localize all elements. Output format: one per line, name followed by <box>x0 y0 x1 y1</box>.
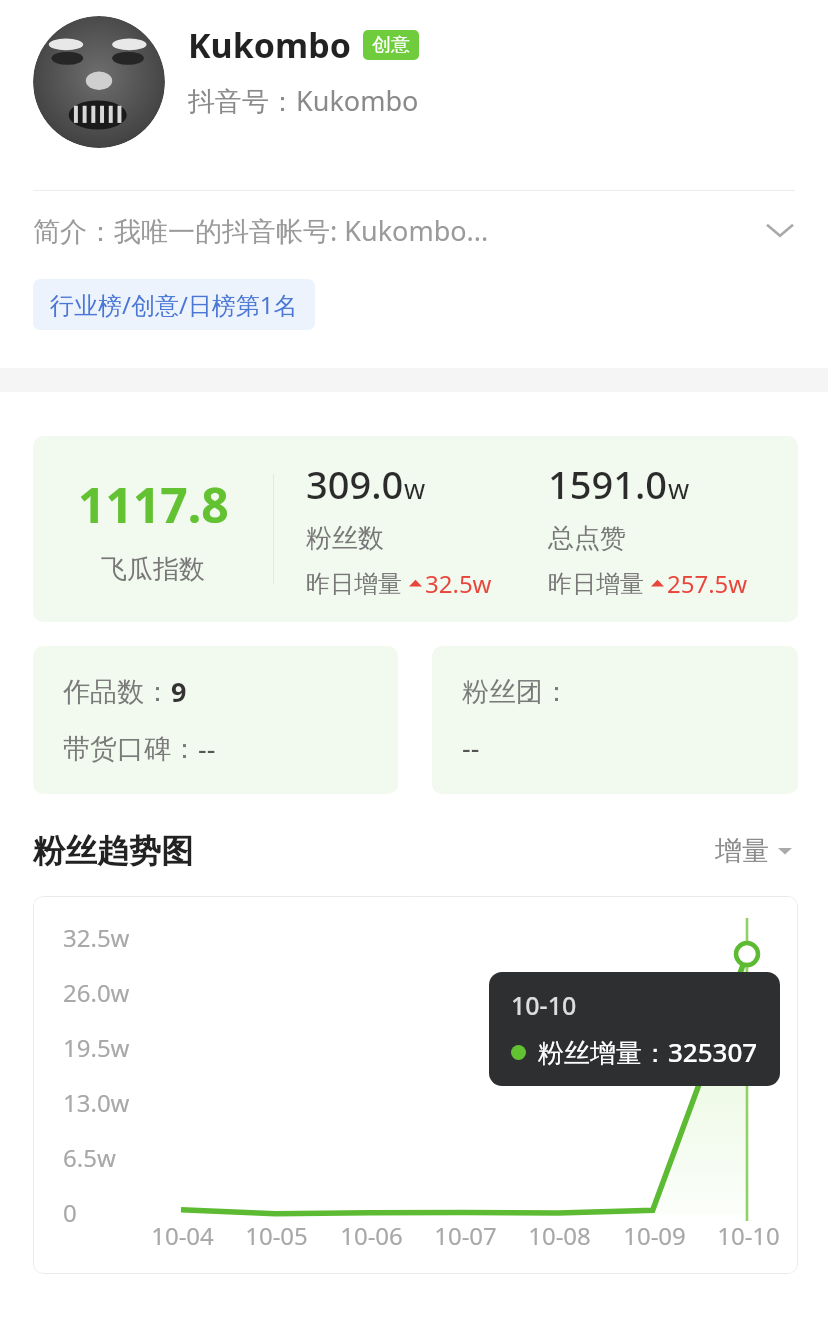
staticText: w <box>668 470 690 507</box>
staticText: 1117.8 <box>78 472 229 537</box>
staticText: 行业榜/创意/日榜第1名 <box>50 288 298 321</box>
staticText: 19.5w <box>63 1031 130 1064</box>
staticText: 昨日增量 <box>548 569 644 599</box>
staticText: 粉丝数 <box>306 522 384 555</box>
button[interactable]: Kukombo <box>33 16 828 148</box>
staticText: 粉丝趋势图 <box>33 831 193 871</box>
staticText: Kukombo <box>188 22 351 68</box>
staticText: w <box>404 470 426 507</box>
button[interactable]: 创意 <box>363 30 419 60</box>
button[interactable]: 展开简介 <box>752 202 808 258</box>
staticText: 10-07 <box>434 1219 497 1252</box>
staticText: 10-09 <box>623 1219 686 1252</box>
button[interactable]: 简介：我唯一的抖音帐号: Kukombo... <box>0 191 828 269</box>
staticText: 昨日增量 <box>306 569 402 599</box>
staticText: 总点赞 <box>548 522 626 555</box>
staticText: 10-10 <box>511 988 577 1022</box>
staticText: 13.0w <box>63 1086 130 1119</box>
staticText: 10-08 <box>528 1219 591 1252</box>
button[interactable]: 行业榜/创意/日榜第1名 <box>33 279 315 330</box>
staticText: 抖音号：Kukombo <box>188 82 419 119</box>
button[interactable]: 1117.8 <box>33 436 798 622</box>
staticText: 10-04 <box>151 1219 214 1252</box>
staticText: 10-10 <box>717 1219 780 1252</box>
button[interactable]: 粉丝团： <box>432 646 798 794</box>
staticText: 粉丝增量：325307 <box>538 1034 758 1070</box>
staticText: 6.5w <box>63 1141 116 1174</box>
staticText: 带货口碑： <box>63 732 198 766</box>
staticText: 10-06 <box>340 1219 403 1252</box>
staticText: 1591.0 <box>548 458 668 510</box>
staticText: 简介：我唯一的抖音帐号: Kukombo... <box>33 212 752 249</box>
staticText: 26.0w <box>63 976 130 1009</box>
staticText: 32.5w <box>425 567 492 600</box>
staticText: 9 <box>171 673 187 710</box>
button[interactable]: 32.5w <box>33 896 798 1274</box>
staticText: 增量 <box>715 834 769 868</box>
staticText: 10-05 <box>245 1219 308 1252</box>
staticText: 32.5w <box>63 921 130 954</box>
staticText: 309.0 <box>306 458 404 510</box>
staticText: 飞瓜指数 <box>101 553 205 586</box>
staticText: 0 <box>63 1196 77 1229</box>
button[interactable]: 作品数： <box>33 646 398 794</box>
button[interactable]: 增量 <box>709 828 798 874</box>
staticText: 作品数： <box>63 675 171 709</box>
staticText: 创意 <box>372 33 410 57</box>
staticText: 257.5w <box>667 567 748 600</box>
staticText: -- <box>462 729 480 766</box>
staticText: 粉丝团： <box>462 675 570 709</box>
staticText: -- <box>198 730 216 767</box>
